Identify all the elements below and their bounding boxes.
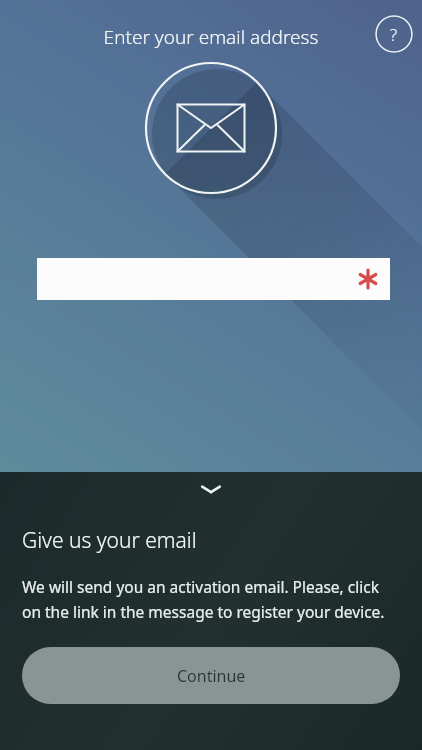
staticText: Give us your email (22, 526, 197, 555)
staticText: We will send you an activation email. Pl… (22, 576, 396, 622)
staticText: Continue (177, 665, 246, 687)
staticText: Enter your email address (0, 24, 422, 50)
button[interactable]: Help (375, 15, 413, 53)
staticText: ? (390, 23, 398, 46)
button[interactable]: Collapse (0, 472, 422, 506)
button[interactable] (37, 258, 390, 300)
button[interactable]: Continue (22, 647, 400, 704)
